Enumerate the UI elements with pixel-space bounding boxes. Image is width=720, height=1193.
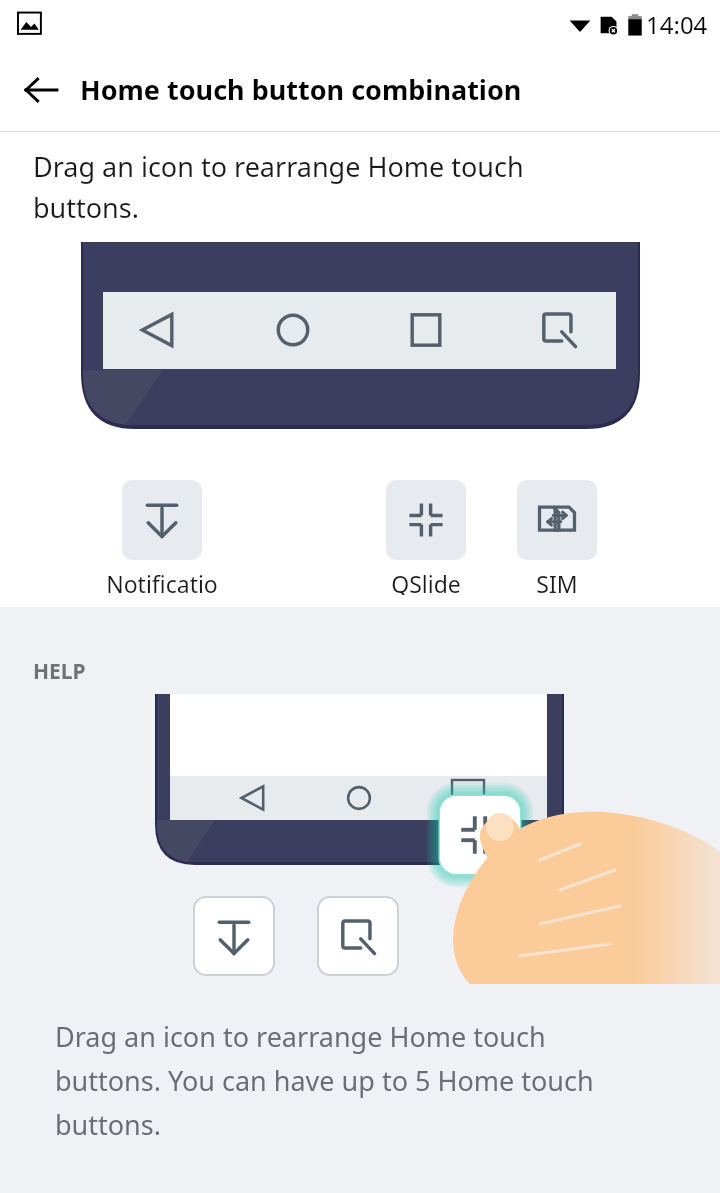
staticText: Home touch button combination <box>80 71 522 108</box>
staticText: QSlide <box>391 568 461 595</box>
button[interactable]: Back <box>14 63 68 117</box>
staticText: 14:04 <box>646 8 708 41</box>
button[interactable]: Notification <box>102 480 222 595</box>
staticText: HELP <box>33 657 86 686</box>
staticText: Drag an icon to rearrange Home touch but… <box>33 148 610 226</box>
staticText: Notification <box>102 568 222 595</box>
staticText: SIM <box>536 568 578 595</box>
button[interactable]: QSlide <box>366 480 486 595</box>
staticText: Drag an icon to rearrange Home touch but… <box>55 1018 650 1142</box>
button[interactable]: SIM <box>497 480 617 595</box>
